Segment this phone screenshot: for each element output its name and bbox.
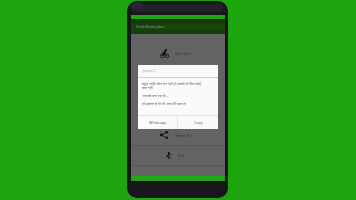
staticText: Copy — [194, 120, 203, 125]
staticText: Whatsapp — [149, 120, 167, 125]
staticText: Sant Joke — [175, 51, 192, 56]
button[interactable]: Exit — [131, 146, 225, 165]
button[interactable]: Sant Joke — [131, 34, 225, 65]
staticText: Share This — [175, 133, 194, 138]
button[interactable]: Copy — [178, 116, 218, 129]
staticText: बहुत अच्छे लोग बन नही हो सकते तो फिर कोई… — [142, 81, 201, 106]
staticText: Santa Banta Jokes — [136, 24, 165, 29]
button[interactable]: Share This — [131, 129, 225, 145]
staticText: Jokes 1 — [143, 68, 157, 73]
button[interactable]: Whatsapp — [138, 116, 177, 129]
staticText: Exit — [178, 153, 185, 158]
